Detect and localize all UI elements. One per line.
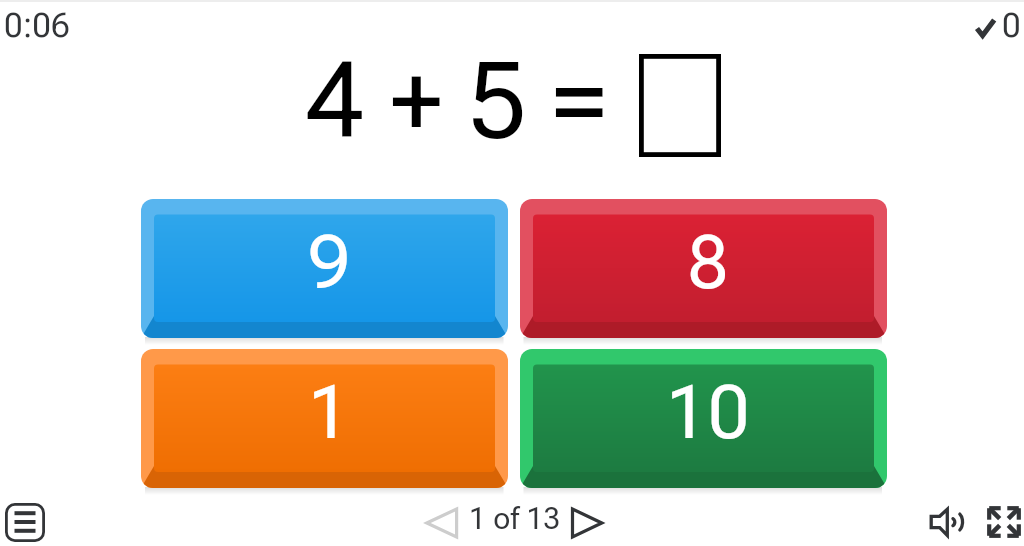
- button[interactable]: Next: [568, 505, 605, 541]
- button[interactable]: 8: [520, 199, 887, 338]
- staticText: 0:06: [4, 6, 70, 45]
- staticText: 0: [1002, 6, 1021, 45]
- staticText: 8: [687, 219, 729, 306]
- staticText: 9: [308, 219, 350, 306]
- staticText: 10: [666, 369, 750, 456]
- button[interactable]: 1: [141, 349, 508, 488]
- button[interactable]: Sound: [927, 505, 967, 541]
- staticText: 4 + 5 =: [305, 40, 606, 163]
- button[interactable]: 10: [520, 349, 887, 488]
- button[interactable]: Previous: [424, 505, 461, 541]
- button[interactable]: Menu: [5, 503, 45, 542]
- button[interactable]: Fullscreen: [985, 504, 1023, 540]
- staticText: 1: [308, 369, 350, 456]
- button[interactable]: 9: [141, 199, 508, 338]
- staticText: 1 of 13: [469, 501, 561, 536]
